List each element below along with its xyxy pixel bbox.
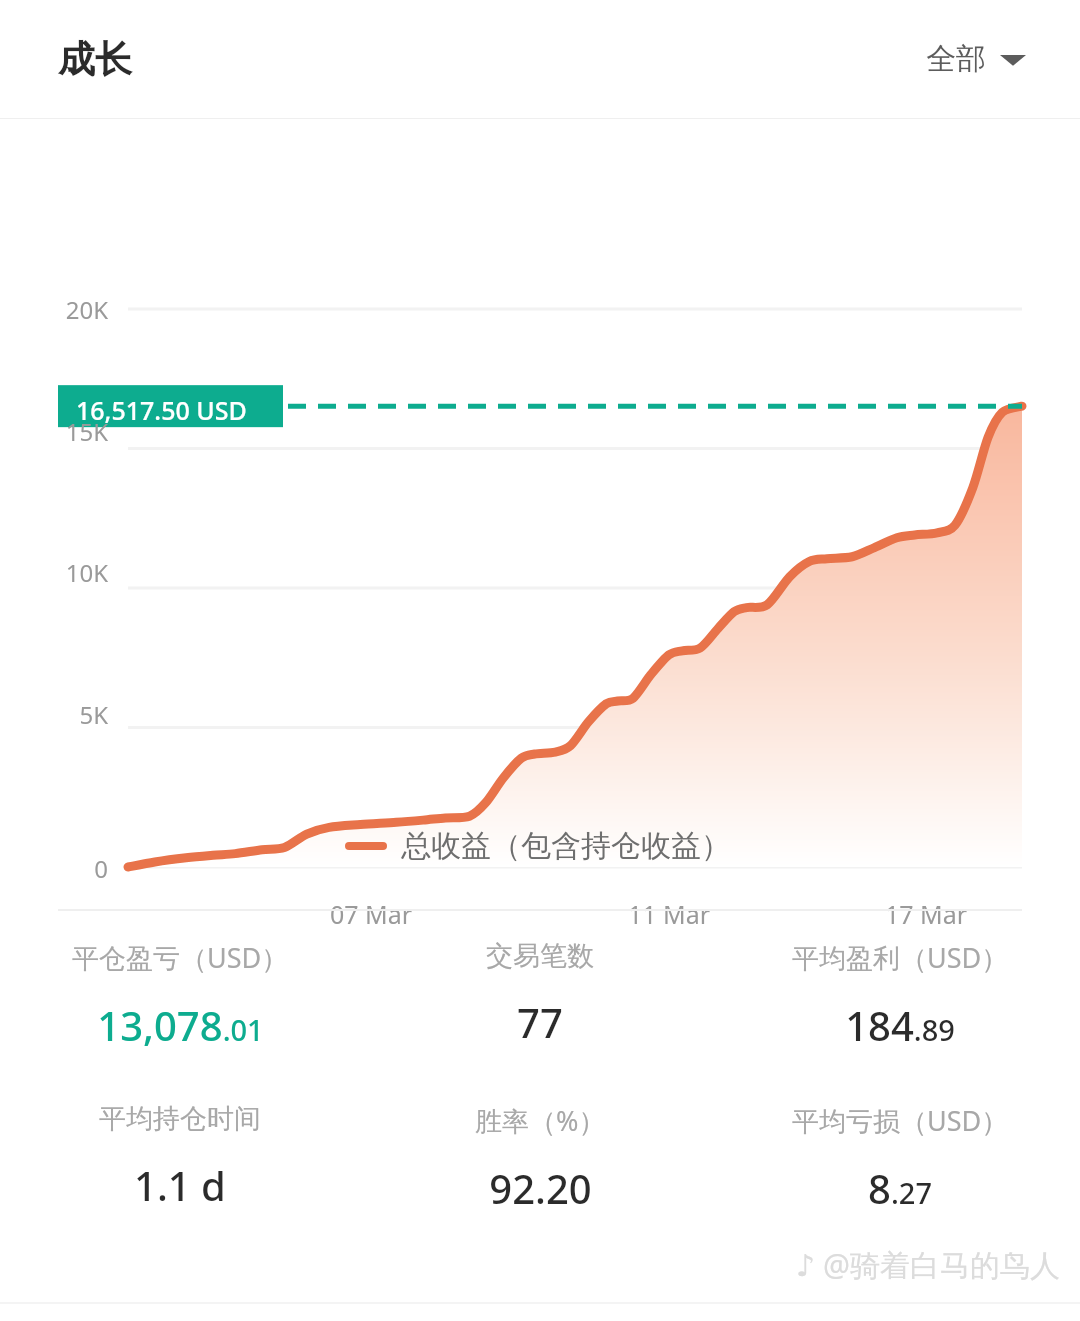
- staticText: 17 Mar: [885, 897, 968, 931]
- staticText: 8.27: [868, 1161, 932, 1215]
- button[interactable]: 平仓盈亏（USD）: [0, 935, 360, 1056]
- staticText: 13,078.01: [97, 998, 264, 1052]
- staticText: 交易笔数: [486, 939, 594, 973]
- button[interactable]: 全部: [922, 32, 1030, 86]
- staticText: 平均盈利（USD）: [792, 939, 1009, 976]
- staticText: 平仓盈亏（USD）: [72, 939, 289, 976]
- button[interactable]: 胜率（%）: [360, 1098, 720, 1219]
- staticText: 胜率（%）: [475, 1102, 606, 1139]
- button[interactable]: 平均持仓时间: [0, 1098, 360, 1216]
- staticText: 15K: [38, 415, 108, 448]
- staticText: 11 Mar: [628, 897, 711, 931]
- staticText: 成长: [58, 36, 132, 83]
- staticText: ♪ @骑着白马的鸟人: [796, 1244, 1060, 1285]
- staticText: 1.1 d: [134, 1158, 226, 1212]
- staticText: 20K: [38, 293, 108, 326]
- button[interactable]: 总收益（包含持仓收益）: [349, 827, 731, 865]
- staticText: 07 Mar: [330, 897, 413, 931]
- staticText: 16,517.50 USD: [76, 393, 247, 427]
- staticText: 10K: [38, 556, 108, 589]
- staticText: 77: [517, 995, 563, 1049]
- staticText: 平均亏损（USD）: [792, 1102, 1009, 1139]
- staticText: 92.20: [489, 1161, 592, 1215]
- staticText: 5K: [38, 698, 108, 731]
- button[interactable]: 平均盈利（USD）: [720, 935, 1080, 1056]
- staticText: 总收益（包含持仓收益）: [401, 827, 731, 865]
- staticText: 全部: [926, 40, 986, 78]
- staticText: 184.89: [845, 998, 955, 1052]
- button[interactable]: 交易笔数: [360, 935, 720, 1053]
- staticText: 0: [38, 852, 108, 885]
- button[interactable]: 平均亏损（USD）: [720, 1098, 1080, 1219]
- staticText: 平均持仓时间: [99, 1102, 261, 1136]
